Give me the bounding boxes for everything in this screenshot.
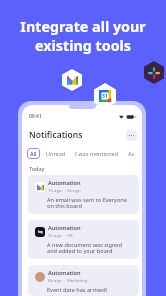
staticText: Automation <box>48 224 81 232</box>
staticText: As <box>128 150 135 157</box>
button[interactable]: I was mentioned <box>72 148 122 159</box>
staticText: hey <box>38 230 43 234</box>
button[interactable]: Automation <box>28 175 139 214</box>
staticText: Event date has arrived! An email was sen… <box>47 286 124 292</box>
button[interactable]: Automation <box>28 265 139 296</box>
button[interactable]: More options <box>126 130 137 141</box>
staticText: Notifications <box>29 129 83 141</box>
staticText: A new document was signed and added to y… <box>47 241 122 255</box>
staticText: All <box>30 150 37 157</box>
staticText: 6h ago · Marketing <box>48 278 88 284</box>
staticText: 1h ago · Design <box>48 188 81 194</box>
staticText: 09:41 <box>29 113 42 120</box>
button[interactable]: As <box>125 148 138 159</box>
button[interactable]: hey <box>28 220 139 259</box>
button[interactable]: All <box>27 148 40 159</box>
staticText: I was mentioned <box>75 150 119 157</box>
staticText: Automation <box>48 179 81 187</box>
staticText: Automation <box>48 269 81 277</box>
staticText: Unread <box>46 150 66 157</box>
button[interactable]: Unread <box>43 148 69 159</box>
staticText: Integrate all your existing tools <box>0 17 166 55</box>
staticText: An email was sent to Everyone on this bo… <box>47 196 127 210</box>
staticText: Today <box>29 165 45 172</box>
staticText: 2h ago · HR <box>48 233 73 239</box>
staticText: 31 <box>102 93 108 100</box>
